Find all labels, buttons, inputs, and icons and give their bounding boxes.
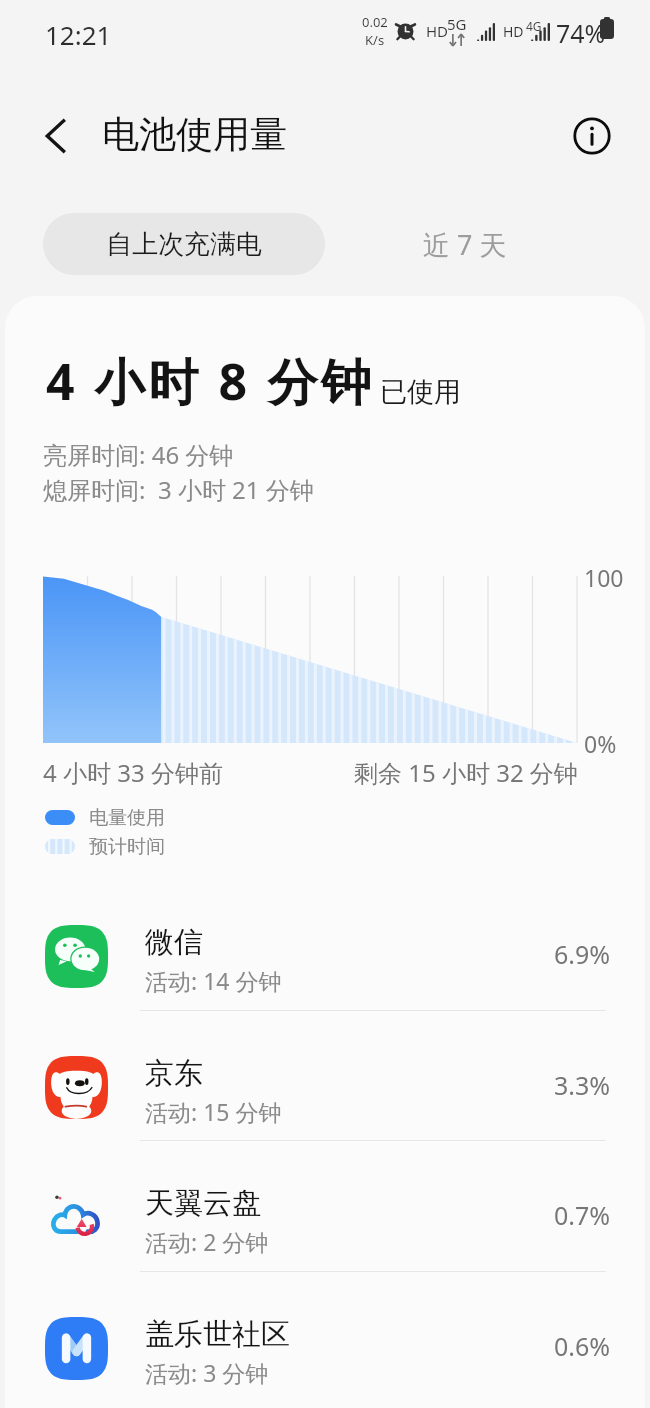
staticText: 100 (584, 562, 624, 593)
staticText: 3.3% (554, 1068, 611, 1102)
staticText: 活动: 2 分钟 (145, 1226, 269, 1257)
button[interactable]: 天翼云盘 (0, 1157, 650, 1288)
staticText: 4 小时 33 分钟前 (43, 756, 223, 789)
staticText: 自上次充满电 (106, 228, 262, 261)
staticText: 活动: 14 分钟 (145, 965, 282, 996)
staticText: 熄屏时间: 3 小时 21 分钟 (43, 473, 314, 506)
staticText: 预计时间 (89, 835, 165, 859)
staticText: 4 小时 8 分钟 (46, 347, 375, 415)
button[interactable]: 京东 (0, 1027, 650, 1158)
button[interactable]: Information (566, 110, 618, 162)
staticText: 5G (447, 14, 467, 34)
staticText: 活动: 3 分钟 (145, 1357, 269, 1388)
staticText: 盖乐世社区 (145, 1316, 290, 1353)
staticText: 0.7% (554, 1198, 611, 1232)
staticText: K/s (365, 31, 385, 49)
staticText: 0.6% (554, 1329, 611, 1363)
staticText: 74% (556, 16, 606, 50)
staticText: 微信 (145, 924, 203, 961)
staticText: 剩余 15 小时 32 分钟 (354, 756, 578, 789)
staticText: 京东 (145, 1055, 203, 1092)
button[interactable]: 微信 (0, 896, 650, 1027)
staticText: 近 7 天 (423, 226, 507, 263)
staticText: 天翼云盘 (145, 1185, 261, 1222)
staticText: 6.9% (554, 937, 611, 971)
staticText: HD (426, 21, 449, 41)
staticText: 12:21 (45, 17, 112, 52)
button[interactable]: 近 7 天 (355, 213, 575, 275)
staticText: HD (503, 22, 524, 41)
staticText: 电量使用 (89, 806, 165, 830)
button[interactable]: Back (28, 108, 84, 164)
staticText: 已使用 (380, 375, 461, 409)
staticText: 0% (584, 728, 617, 759)
staticText: 电池使用量 (102, 111, 287, 158)
button[interactable]: 自上次充满电 (43, 213, 325, 275)
staticText: 亮屏时间: 46 分钟 (43, 438, 234, 471)
staticText: 4G (526, 18, 542, 34)
button[interactable]: 盖乐世社区 (0, 1288, 650, 1408)
staticText: 活动: 15 分钟 (145, 1096, 282, 1127)
staticText: 0.02 (362, 13, 388, 31)
